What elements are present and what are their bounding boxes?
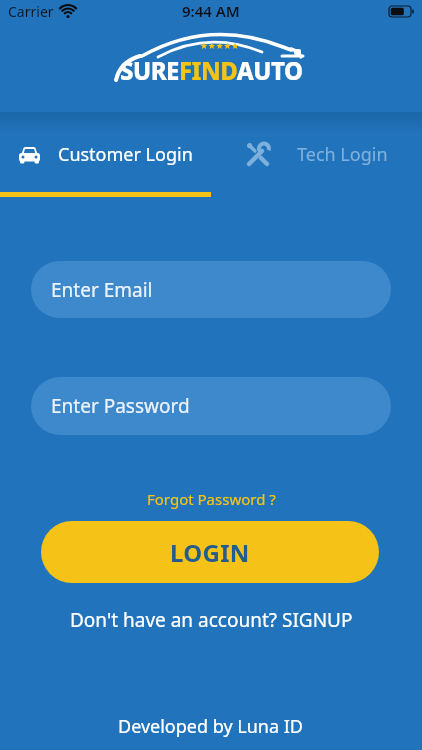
button[interactable]: Customer Login: [0, 112, 211, 197]
staticText: Enter Email: [51, 277, 153, 303]
staticText: Customer Login: [58, 142, 193, 167]
button[interactable]: Tech Login: [211, 112, 422, 197]
button[interactable]: LOGIN: [41, 521, 379, 583]
staticText: Forgot Password ?: [147, 489, 276, 509]
button[interactable]: Enter Password: [31, 377, 391, 435]
staticText: LOGIN: [170, 536, 250, 569]
staticText: Tech Login: [297, 142, 388, 167]
button[interactable]: Enter Email: [31, 261, 391, 318]
staticText: SUREFINDAUTO: [120, 54, 303, 87]
staticText: Developed by Luna ID: [118, 714, 304, 739]
button[interactable]: Don't have an account? SIGNUP: [70, 607, 353, 633]
staticText: 9:44 AM: [182, 1, 240, 21]
button[interactable]: Forgot Password ?: [147, 489, 276, 509]
staticText: Don't have an account? SIGNUP: [70, 607, 353, 633]
staticText: Enter Password: [51, 393, 190, 419]
staticText: Carrier: [8, 2, 54, 21]
